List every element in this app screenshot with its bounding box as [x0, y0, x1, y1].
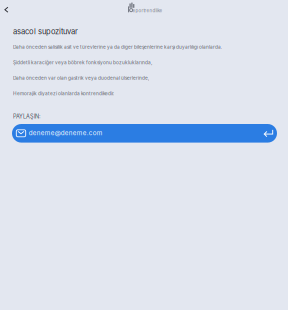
- staticText: Şiddetli karaciğer veya böbrek fonksiyon…: [13, 60, 152, 65]
- staticText: eportrendlike: [133, 8, 163, 13]
- staticText: Hemorajik diyatezi olanlarda kontrendike…: [13, 91, 114, 96]
- staticText: Daha önceden salisilik asit ve türevleri…: [13, 44, 222, 50]
- staticText: PAYLAŞIN:: [13, 113, 41, 120]
- button[interactable]: Back: [0, 2, 14, 17]
- button[interactable]: deneme@deneme.com: [12, 124, 277, 143]
- staticText: asacol supozituvar: [13, 27, 78, 36]
- staticText: deneme@deneme.com: [29, 129, 103, 137]
- staticText: Daha önceden var olan gastrik veya duode…: [13, 75, 149, 81]
